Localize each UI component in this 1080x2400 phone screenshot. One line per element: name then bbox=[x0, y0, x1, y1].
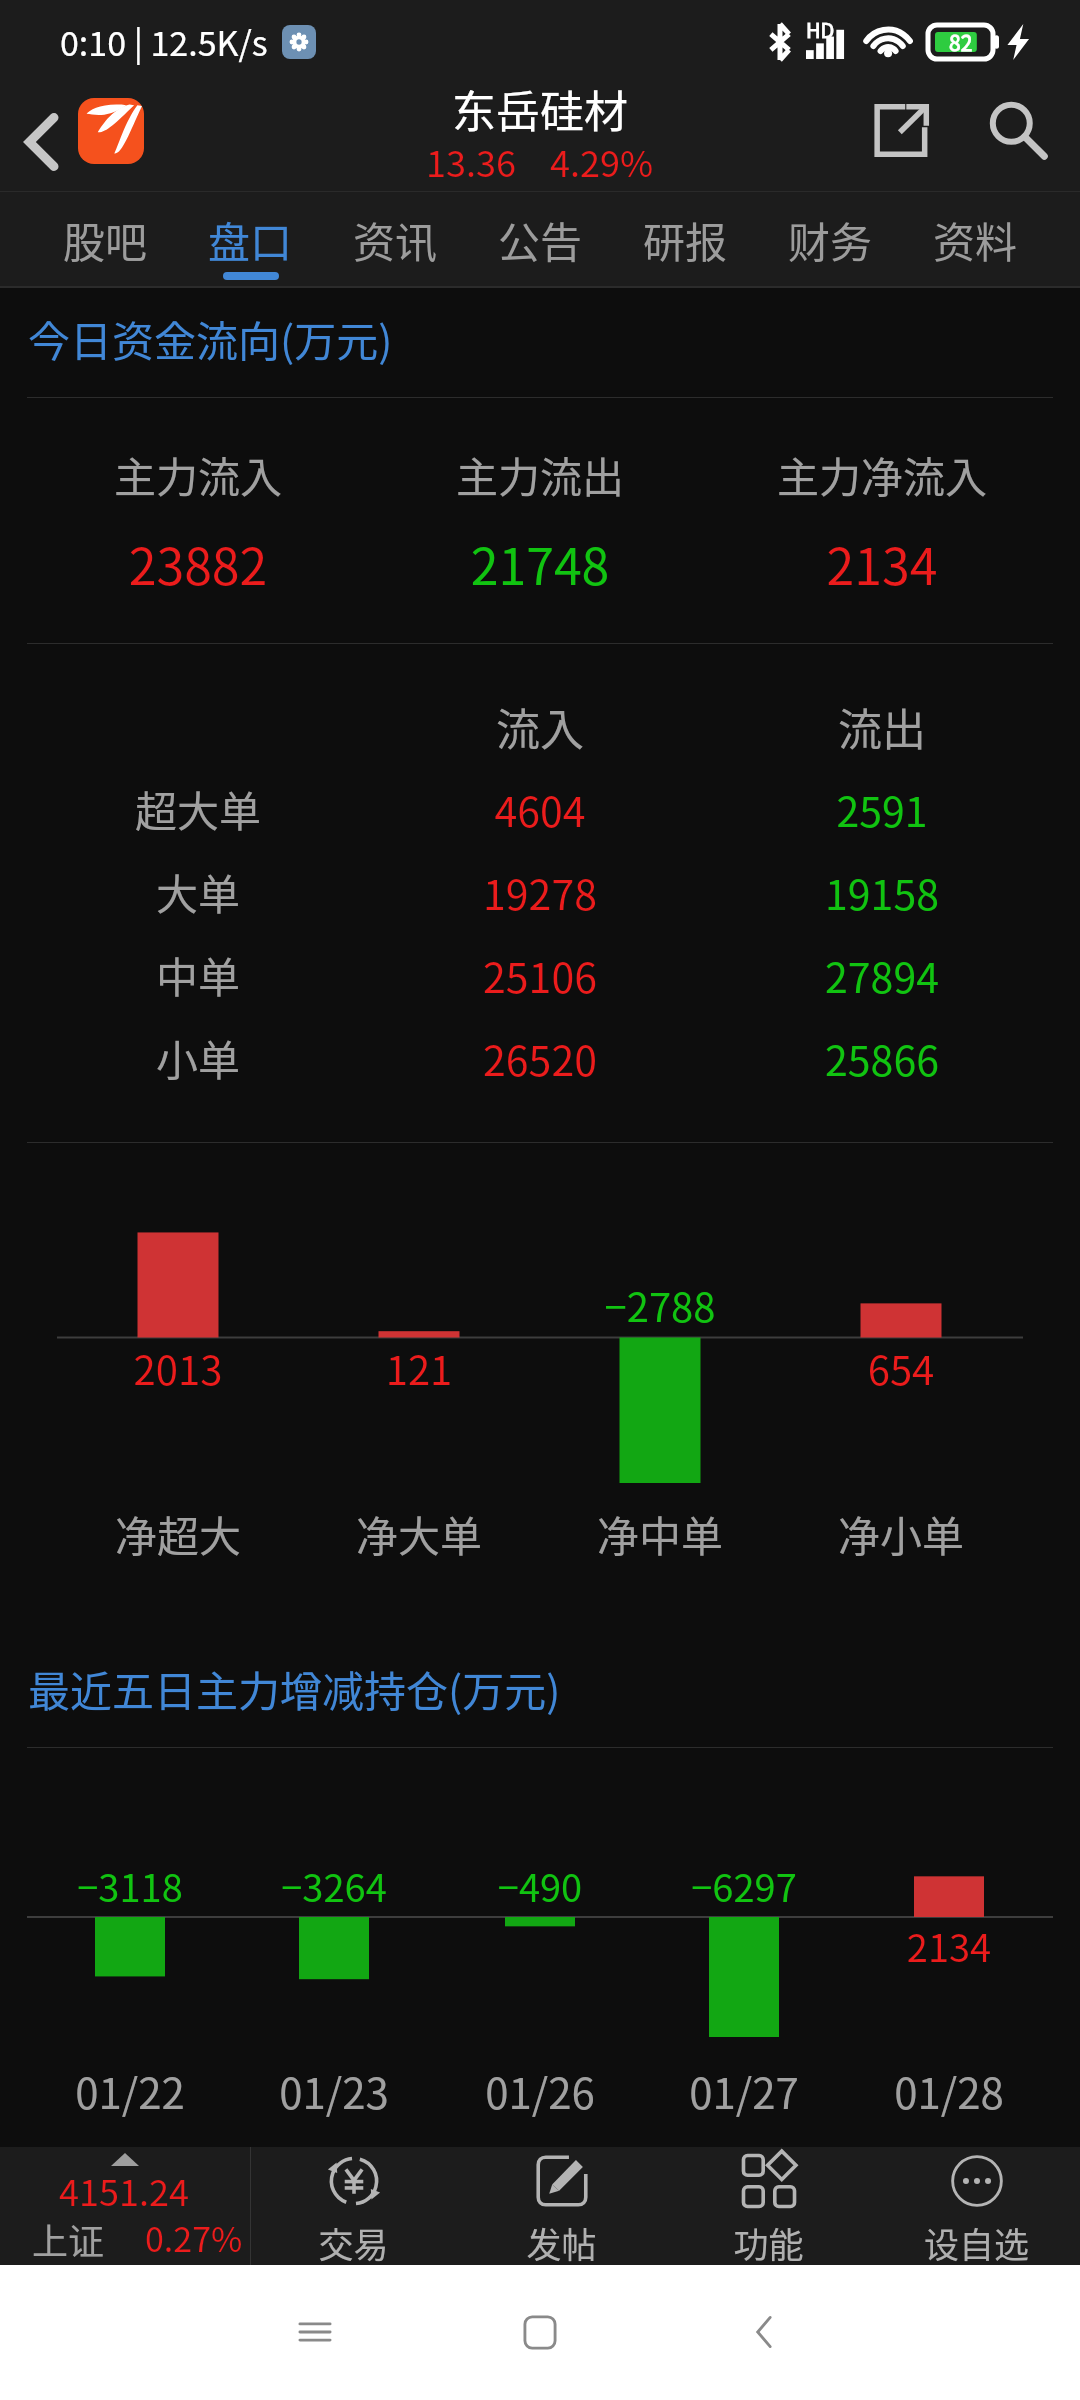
button[interactable]: Recent apps bbox=[265, 2282, 365, 2382]
staticText: 82 bbox=[949, 27, 973, 57]
staticText: 654 bbox=[701, 1339, 1080, 1397]
staticText: 盘口 bbox=[208, 209, 293, 270]
button[interactable]: Home bbox=[490, 2282, 590, 2382]
staticText: 中单 bbox=[0, 944, 398, 1005]
staticText: 最近五日主力增减持仓(万元) bbox=[28, 1658, 561, 1719]
staticText: 功能 bbox=[665, 2217, 872, 2268]
button[interactable]: 功能 bbox=[665, 2147, 872, 2265]
staticText: 超大单 bbox=[0, 778, 398, 839]
staticText: 4151.24 bbox=[24, 2164, 224, 2216]
button[interactable]: 股吧 bbox=[32, 191, 178, 288]
staticText: 上证 bbox=[32, 2213, 105, 2265]
button[interactable]: East Money logo bbox=[78, 98, 144, 164]
button[interactable]: 4151.24 bbox=[0, 2147, 250, 2265]
staticText: 01/28 bbox=[749, 2060, 1080, 2121]
staticText: 01/27 bbox=[544, 2060, 944, 2121]
staticText: 净中单 bbox=[460, 1503, 860, 1564]
button[interactable]: Network speed settings bbox=[282, 25, 316, 59]
staticText: 19278 bbox=[340, 862, 740, 921]
button[interactable]: Back bbox=[0, 96, 84, 188]
staticText: 2591 bbox=[682, 779, 1080, 838]
staticText: 27894 bbox=[682, 945, 1080, 1004]
staticText: 净超大 bbox=[0, 1503, 378, 1564]
button[interactable]: Back bbox=[715, 2282, 815, 2382]
button[interactable]: Search bbox=[976, 88, 1060, 172]
staticText: 交易 bbox=[250, 2217, 457, 2268]
button[interactable]: 公告 bbox=[468, 191, 613, 288]
staticText: 2134 bbox=[749, 1918, 1080, 1973]
staticText: 25106 bbox=[340, 945, 740, 1004]
staticText: −3118 bbox=[0, 1858, 330, 1913]
staticText: 流出 bbox=[682, 695, 1080, 759]
staticText: 公告 bbox=[498, 209, 583, 270]
button[interactable]: 资讯 bbox=[323, 191, 468, 288]
staticText: 资讯 bbox=[353, 209, 438, 270]
staticText: 0.27% bbox=[145, 2213, 243, 2262]
staticText: 主力净流入 bbox=[682, 444, 1080, 505]
staticText: 19158 bbox=[682, 862, 1080, 921]
button[interactable]: Share bbox=[860, 88, 944, 172]
staticText: −490 bbox=[340, 1858, 740, 1913]
staticText: HD bbox=[806, 15, 835, 44]
staticText: −3264 bbox=[134, 1858, 534, 1913]
staticText: 121 bbox=[219, 1339, 619, 1397]
button[interactable]: 财务 bbox=[758, 191, 903, 288]
staticText: 2013 bbox=[0, 1339, 378, 1397]
staticText: 大单 bbox=[0, 861, 398, 922]
staticText: 流入 bbox=[340, 695, 740, 759]
staticText: 25866 bbox=[682, 1028, 1080, 1087]
staticText: 今日资金流向(万元) bbox=[28, 308, 393, 369]
button[interactable]: 盘口 bbox=[178, 191, 323, 288]
staticText: 股吧 bbox=[63, 209, 148, 270]
staticText: 净小单 bbox=[701, 1503, 1080, 1564]
staticText: 01/23 bbox=[134, 2060, 534, 2121]
staticText: 资料 bbox=[933, 209, 1018, 270]
staticText: 4604 bbox=[340, 779, 740, 838]
staticText: 01/22 bbox=[0, 2060, 330, 2121]
staticText: 0:10 | 12.5K/s bbox=[60, 17, 268, 66]
staticText: 财务 bbox=[788, 209, 873, 270]
button[interactable]: 发帖 bbox=[458, 2147, 665, 2265]
staticText: 21748 bbox=[340, 527, 740, 599]
button[interactable]: 设自选 bbox=[873, 2147, 1080, 2265]
staticText: 4.29% bbox=[550, 135, 654, 187]
staticText: −6297 bbox=[544, 1858, 944, 1913]
button[interactable]: 研报 bbox=[613, 191, 758, 288]
staticText: 01/26 bbox=[340, 2060, 740, 2121]
staticText: 13.36 bbox=[426, 135, 516, 187]
button[interactable]: 交易 bbox=[250, 2147, 457, 2265]
button[interactable]: 资料 bbox=[903, 191, 1048, 288]
staticText: 研报 bbox=[643, 209, 728, 270]
staticText: −2788 bbox=[460, 1276, 860, 1334]
staticText: 主力流出 bbox=[340, 444, 740, 505]
staticText: 净大单 bbox=[219, 1503, 619, 1564]
staticText: 设自选 bbox=[873, 2217, 1080, 2268]
staticText: 主力流入 bbox=[0, 444, 398, 505]
staticText: 23882 bbox=[0, 527, 398, 599]
staticText: 26520 bbox=[340, 1028, 740, 1087]
staticText: 东岳硅材 bbox=[340, 77, 740, 141]
staticText: 2134 bbox=[682, 527, 1080, 599]
staticText: 小单 bbox=[0, 1027, 398, 1088]
staticText: 发帖 bbox=[458, 2217, 665, 2268]
